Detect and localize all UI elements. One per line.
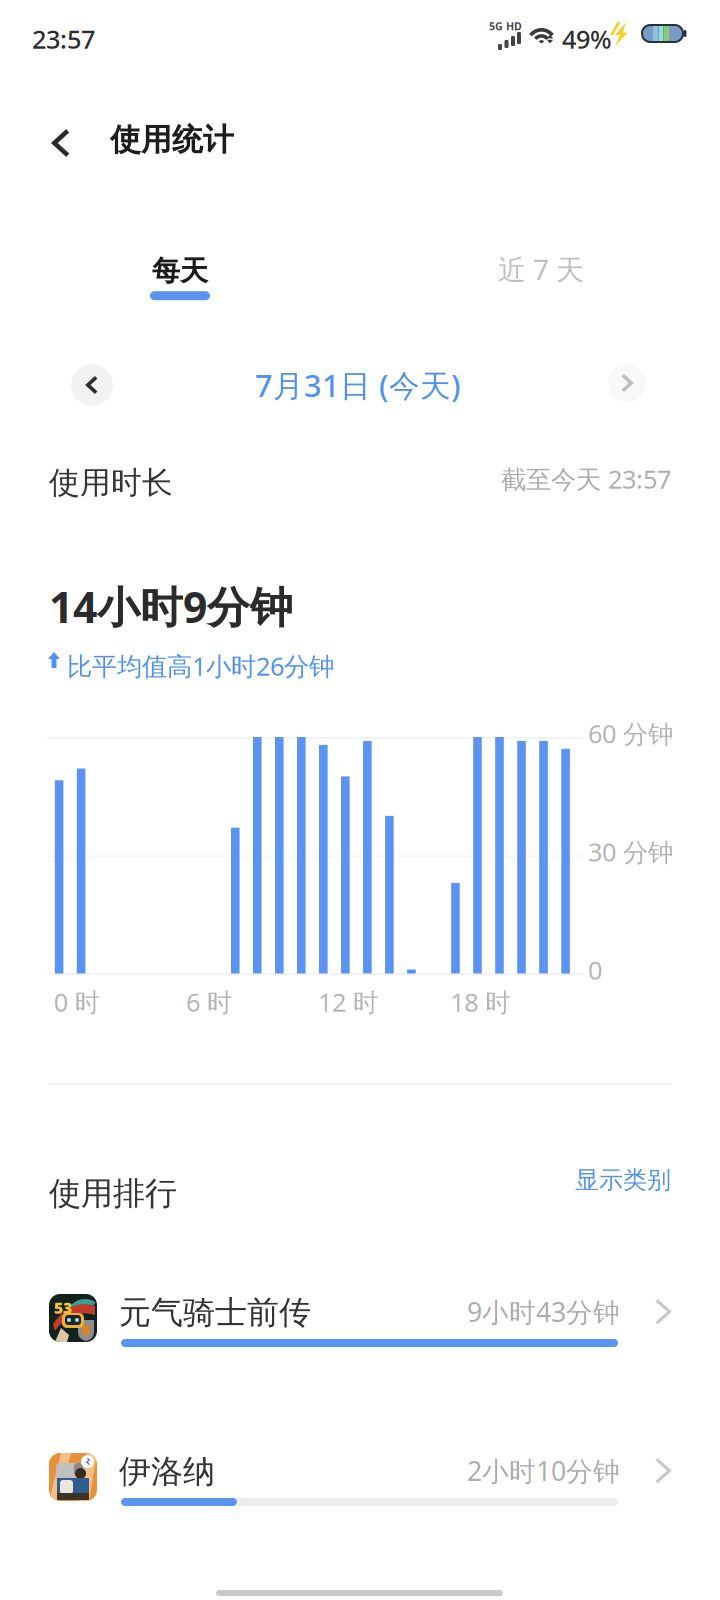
staticText: 显示类别	[575, 1165, 671, 1195]
staticText: 使用统计	[110, 121, 234, 159]
staticText: 伊洛纳	[119, 1452, 215, 1491]
button[interactable]: 近 7 天	[466, 241, 616, 297]
staticText: 近 7 天	[498, 250, 584, 288]
staticText: 每天	[152, 254, 208, 288]
staticText: 5G HD	[489, 19, 522, 33]
staticText: 53	[54, 1297, 72, 1318]
staticText: 49%	[562, 22, 612, 56]
staticText: 60 分钟	[588, 717, 673, 750]
staticText: 30 分钟	[588, 835, 673, 868]
button[interactable]: 显示类别	[0, 1158, 671, 1202]
button[interactable]: Next day	[608, 364, 646, 402]
staticText: 9小时43分钟	[467, 1294, 620, 1329]
staticText: 14小时9分钟	[49, 578, 293, 635]
staticText: 23:57	[32, 22, 95, 56]
staticText: 比平均值高1小时26分钟	[67, 649, 334, 683]
button[interactable]: 每天	[105, 249, 255, 305]
staticText: 2小时10分钟	[467, 1453, 620, 1488]
button[interactable]: 7月31日 (今天)	[168, 364, 548, 406]
button[interactable]: Back	[31, 113, 91, 173]
staticText: 7月31日 (今天)	[255, 365, 461, 405]
staticText: 使用时长	[49, 464, 173, 502]
button[interactable]: 伊洛纳	[0, 1452, 720, 1514]
staticText: 6 时	[186, 985, 232, 1019]
staticText: 18 时	[450, 985, 510, 1019]
button[interactable]: Previous day	[71, 364, 113, 406]
staticText: 0 时	[54, 985, 100, 1019]
staticText: 截至今天 23:57	[501, 462, 671, 496]
staticText: 使用排行	[49, 1174, 177, 1213]
staticText: 元气骑士前传	[119, 1293, 311, 1332]
staticText: 0	[588, 953, 602, 987]
staticText: 12 时	[318, 985, 378, 1019]
button[interactable]: 53	[0, 1293, 720, 1355]
